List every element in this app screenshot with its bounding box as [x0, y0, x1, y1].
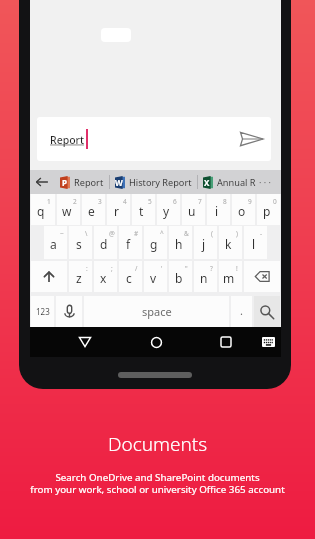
button[interactable]: -	[244, 226, 267, 259]
staticText: #	[134, 229, 139, 238]
button[interactable]: \	[69, 226, 92, 259]
button[interactable]: "	[169, 261, 192, 292]
button[interactable]: Back	[32, 172, 52, 192]
button[interactable]: 5	[132, 194, 155, 225]
staticText: e	[88, 203, 95, 219]
button[interactable]: Home	[142, 330, 170, 354]
button[interactable]: X	[203, 176, 256, 189]
staticText: 1	[47, 197, 51, 206]
staticText: g	[150, 236, 158, 252]
staticText: !	[236, 264, 238, 273]
staticText: 9	[248, 197, 252, 206]
staticText: '	[161, 264, 163, 273]
button[interactable]: space	[84, 296, 229, 327]
staticText: History Report	[129, 176, 192, 189]
staticText: 6	[173, 197, 177, 206]
staticText: w	[62, 203, 72, 219]
staticText: 123	[36, 306, 50, 317]
button[interactable]: W	[115, 176, 192, 189]
button[interactable]: )	[219, 226, 242, 259]
button[interactable]: 123	[31, 296, 54, 327]
button[interactable]: 6	[157, 194, 180, 225]
staticText: .	[240, 303, 243, 318]
other: Backspace	[255, 271, 270, 282]
staticText: -	[260, 229, 263, 238]
button[interactable]: Search	[254, 296, 280, 327]
button[interactable]: .	[231, 296, 252, 327]
button[interactable]: ;	[94, 261, 117, 292]
staticText: (	[211, 229, 213, 238]
button[interactable]: ^	[144, 226, 167, 259]
other: Voice input	[64, 305, 75, 318]
staticText: W	[115, 177, 123, 188]
button[interactable]: 3	[82, 194, 105, 225]
button[interactable]: (	[194, 226, 217, 259]
staticText: f	[126, 236, 131, 252]
button[interactable]: Hide keyboard	[254, 330, 282, 354]
staticText: z	[76, 270, 82, 286]
staticText: X	[204, 177, 210, 188]
button[interactable]: Recent apps	[212, 330, 240, 354]
button[interactable]: Backspace	[244, 261, 280, 292]
other: Shift	[44, 271, 54, 282]
staticText: k	[225, 236, 232, 252]
staticText: b	[175, 270, 183, 286]
staticText: )	[236, 229, 238, 238]
button[interactable]: 8	[207, 194, 230, 225]
button[interactable]: Report	[37, 117, 271, 161]
button[interactable]: 9	[232, 194, 255, 225]
staticText: Documents	[108, 431, 208, 457]
staticText: · · ·	[259, 176, 271, 188]
staticText: m	[223, 270, 235, 286]
button[interactable]: 7	[182, 194, 205, 225]
staticText: p	[263, 203, 271, 219]
staticText: l	[252, 236, 256, 252]
staticText: 7	[198, 197, 202, 206]
staticText: 4	[123, 197, 127, 206]
button[interactable]: !	[219, 261, 242, 292]
staticText: v	[150, 270, 157, 286]
other: Search	[260, 305, 274, 319]
staticText: y	[163, 203, 170, 219]
button[interactable]: '	[144, 261, 167, 292]
staticText: Search OneDrive and SharePoint documents…	[30, 471, 285, 496]
staticText: space	[142, 304, 172, 319]
staticText: ?	[210, 264, 213, 273]
staticText: i	[215, 203, 219, 219]
button[interactable]: P	[60, 176, 104, 189]
button[interactable]: :	[69, 261, 92, 292]
staticText: 5	[148, 197, 152, 206]
staticText: ^	[160, 229, 164, 238]
button[interactable]: Shift	[31, 261, 67, 292]
button[interactable]: Back	[71, 330, 99, 354]
staticText: q	[37, 203, 45, 219]
staticText: Report	[74, 176, 104, 189]
button[interactable]: #	[119, 226, 142, 259]
staticText: 8	[223, 197, 227, 206]
button[interactable]: 4	[107, 194, 130, 225]
button[interactable]: 2	[57, 194, 80, 225]
staticText: u	[188, 203, 196, 219]
staticText: 0	[273, 197, 277, 206]
button[interactable]: Voice input	[56, 296, 82, 327]
staticText: 3	[98, 197, 102, 206]
staticText: s	[76, 236, 82, 252]
button[interactable]: ~	[44, 226, 67, 259]
staticText: ;	[111, 264, 113, 273]
button[interactable]: &	[169, 226, 192, 259]
staticText: n	[200, 270, 208, 286]
staticText: "	[185, 264, 188, 273]
staticText: r	[114, 203, 119, 219]
staticText: P	[62, 177, 67, 188]
staticText: :	[86, 264, 88, 273]
button[interactable]: /	[119, 261, 142, 292]
staticText: /	[135, 264, 138, 273]
staticText: Report	[50, 133, 85, 147]
button[interactable]: 0	[257, 194, 280, 225]
button[interactable]: Send	[232, 120, 270, 158]
staticText: \	[85, 229, 88, 238]
button[interactable]: 1	[31, 194, 55, 225]
button[interactable]: @	[94, 226, 117, 259]
button[interactable]: ?	[194, 261, 217, 292]
staticText: d	[100, 236, 108, 252]
